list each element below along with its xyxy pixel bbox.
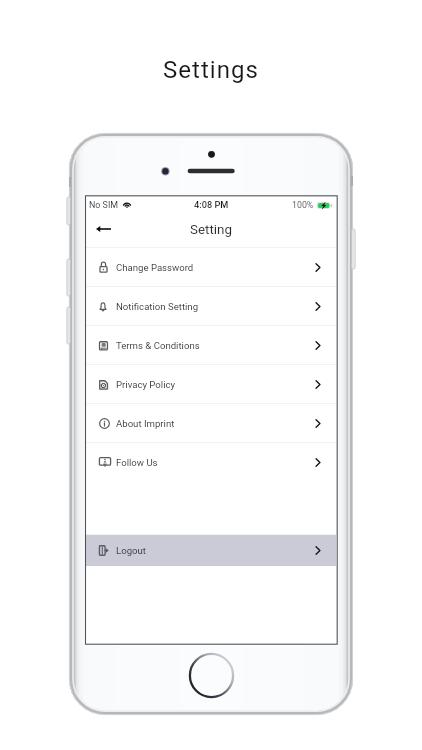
button[interactable]: Privacy Policy bbox=[86, 365, 336, 403]
staticText: Setting bbox=[190, 222, 232, 238]
button[interactable]: Back bbox=[91, 218, 115, 242]
staticText: Privacy Policy bbox=[116, 379, 176, 390]
staticText: Notification Setting bbox=[116, 301, 199, 312]
button[interactable]: Follow Us bbox=[86, 443, 336, 481]
staticText: 100% bbox=[292, 200, 314, 210]
button[interactable]: Change Password bbox=[86, 248, 336, 286]
staticText: 4:08 PM bbox=[194, 199, 229, 210]
staticText: About Imprint bbox=[116, 418, 175, 429]
staticText: Settings bbox=[0, 56, 422, 84]
button[interactable]: Notification Setting bbox=[86, 287, 336, 325]
staticText: Logout bbox=[116, 545, 146, 556]
button[interactable]: Terms & Conditions bbox=[86, 326, 336, 364]
staticText: No SIM bbox=[89, 200, 119, 210]
staticText: Terms & Conditions bbox=[116, 340, 200, 351]
staticText: Follow Us bbox=[116, 457, 158, 468]
staticText: Change Password bbox=[116, 262, 194, 273]
button[interactable]: Logout bbox=[86, 535, 336, 566]
button[interactable]: About Imprint bbox=[86, 404, 336, 442]
